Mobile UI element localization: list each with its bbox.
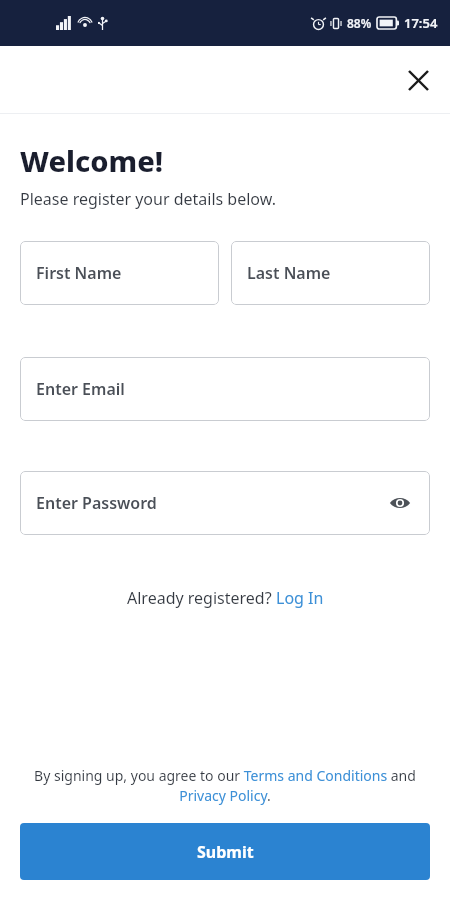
staticText: By signing up, you agree to our Terms an…: [34, 766, 416, 806]
button[interactable]: Log In: [276, 587, 324, 609]
button[interactable]: Enter Email: [20, 357, 430, 421]
staticText: Welcome!: [20, 141, 164, 180]
button[interactable]: Submit: [20, 823, 430, 880]
staticText: Submit: [197, 841, 254, 863]
staticText: Last Name: [247, 262, 331, 284]
staticText: Enter Email: [36, 378, 125, 400]
button[interactable]: Close: [394, 56, 442, 104]
button[interactable]: First Name: [20, 241, 219, 305]
staticText: Already registered?: [127, 587, 276, 609]
staticText: Enter Password: [36, 492, 157, 514]
button[interactable]: Last Name: [231, 241, 430, 305]
staticText: Log In: [276, 587, 324, 609]
staticText: 17:54: [404, 14, 438, 32]
staticText: First Name: [36, 262, 122, 284]
button[interactable]: Enter Password: [20, 471, 430, 535]
button[interactable]: Show password: [380, 483, 420, 523]
staticText: 88%: [347, 15, 372, 31]
staticText: Please register your details below.: [20, 188, 276, 210]
